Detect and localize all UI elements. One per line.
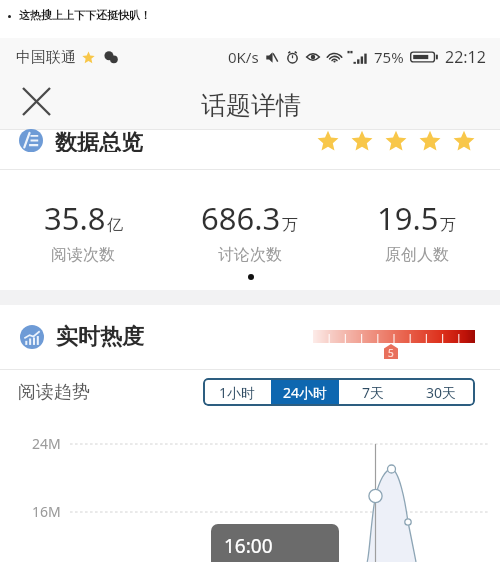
staticText: 亿 — [107, 215, 123, 235]
staticText: 16M — [32, 502, 61, 521]
staticText: 686.3 — [201, 197, 281, 239]
staticText: 75% — [374, 47, 404, 67]
button[interactable]: Close — [15, 80, 57, 122]
staticText: 22:12 — [445, 46, 486, 68]
staticText: 24小时 — [283, 383, 328, 402]
staticText: 数据总览 — [55, 129, 143, 152]
staticText: 万 — [282, 215, 298, 235]
staticText: 万 — [440, 215, 456, 235]
button[interactable]: 24小时 — [271, 378, 339, 406]
staticText: 24M — [32, 434, 61, 453]
staticText: 这热搜上上下下还挺快叭！ — [19, 8, 151, 22]
staticText: 话题详情 — [201, 90, 301, 121]
staticText: 35.8 — [44, 197, 106, 239]
staticText: 30天 — [426, 383, 457, 402]
staticText: 原创人数 — [385, 245, 449, 265]
button[interactable]: 30天 — [407, 378, 475, 406]
button[interactable]: 7天 — [339, 378, 407, 406]
staticText: 中国联通 — [16, 48, 76, 67]
staticText: 0K/s — [228, 47, 259, 67]
staticText: 19.5 — [377, 197, 439, 239]
staticText: 16:00 — [224, 533, 273, 559]
staticText: 7天 — [362, 383, 385, 402]
button[interactable]: 1小时 — [203, 378, 271, 406]
staticText: 实时热度 — [56, 323, 144, 351]
staticText: 1小时 — [219, 383, 256, 402]
staticText: 阅读次数 — [51, 245, 115, 265]
staticText: 讨论次数 — [218, 245, 282, 265]
staticText: 5 — [388, 346, 394, 360]
staticText: 阅读趋势 — [18, 381, 90, 404]
